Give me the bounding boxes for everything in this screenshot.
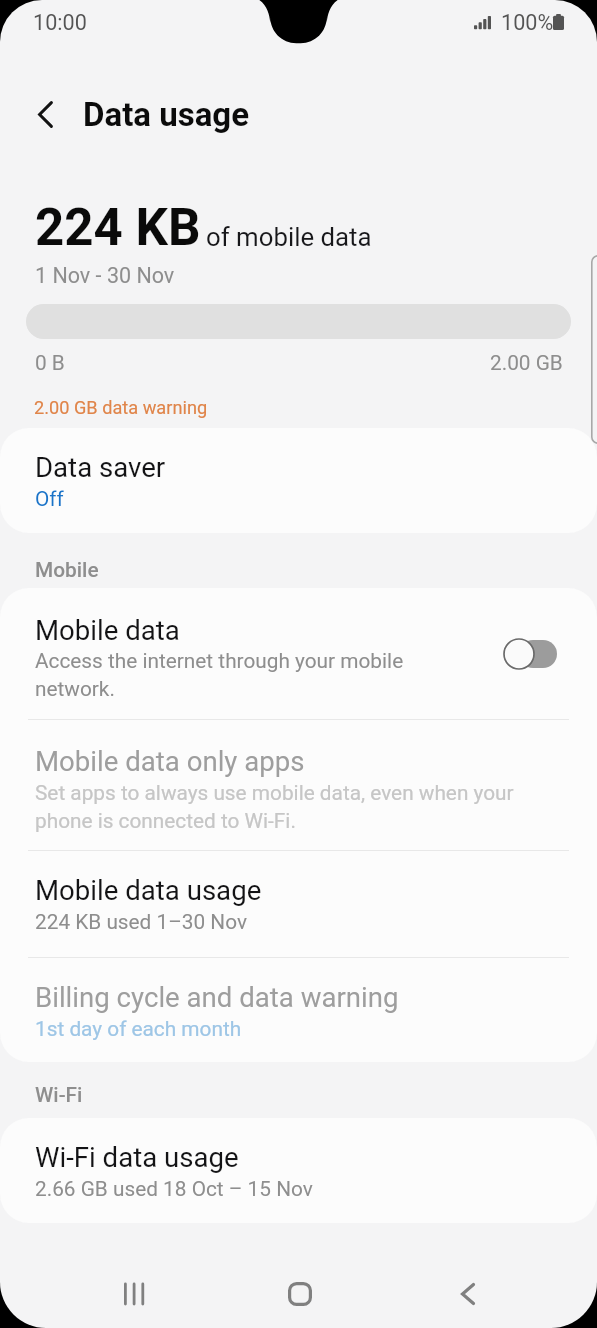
staticText: 0 B (35, 351, 65, 374)
staticText: Data usage (83, 95, 250, 134)
staticText: 2.00 GB (490, 351, 563, 374)
staticText: Wi-Fi data usage (35, 1141, 239, 1173)
button[interactable]: Recents (104, 1269, 164, 1319)
staticText: 10:00 (33, 10, 87, 35)
staticText: Wi-Fi (35, 1083, 83, 1107)
staticText: 2.66 GB used 18 Oct – 15 Nov (35, 1177, 313, 1201)
staticText: Access the internet through your mobile … (35, 646, 404, 702)
button[interactable]: Home (270, 1269, 330, 1319)
staticText: Off (35, 487, 64, 511)
button[interactable]: Billing cycle and data warning (0, 958, 597, 1062)
button[interactable]: Mobile data usage (0, 851, 597, 957)
button[interactable]: Navigate up (16, 85, 74, 143)
staticText: Data saver (35, 451, 166, 483)
staticText: Billing cycle and data warning (35, 981, 399, 1013)
button[interactable]: Back (438, 1269, 498, 1319)
staticText: Set apps to always use mobile data, even… (35, 778, 514, 834)
button[interactable]: Data saver (0, 428, 597, 533)
staticText: Mobile data usage (35, 874, 262, 906)
button[interactable]: Mobile data (0, 588, 597, 719)
staticText: Mobile (35, 558, 99, 582)
staticText: 1 Nov - 30 Nov (35, 263, 175, 288)
button[interactable]: Mobile data only apps (0, 720, 597, 850)
staticText: Mobile data (35, 614, 180, 646)
staticText: 2.00 GB data warning (34, 397, 208, 418)
staticText: 224 KB (35, 198, 201, 254)
button[interactable]: Wi-Fi data usage (0, 1118, 597, 1223)
button[interactable]: Mobile data switch, off (503, 637, 559, 671)
staticText: 1st day of each month (35, 1017, 242, 1041)
staticText: Mobile data only apps (35, 745, 305, 777)
staticText: 224 KB used 1–30 Nov (35, 910, 247, 934)
staticText: 100% (501, 10, 554, 35)
staticText: of mobile data (206, 222, 372, 252)
